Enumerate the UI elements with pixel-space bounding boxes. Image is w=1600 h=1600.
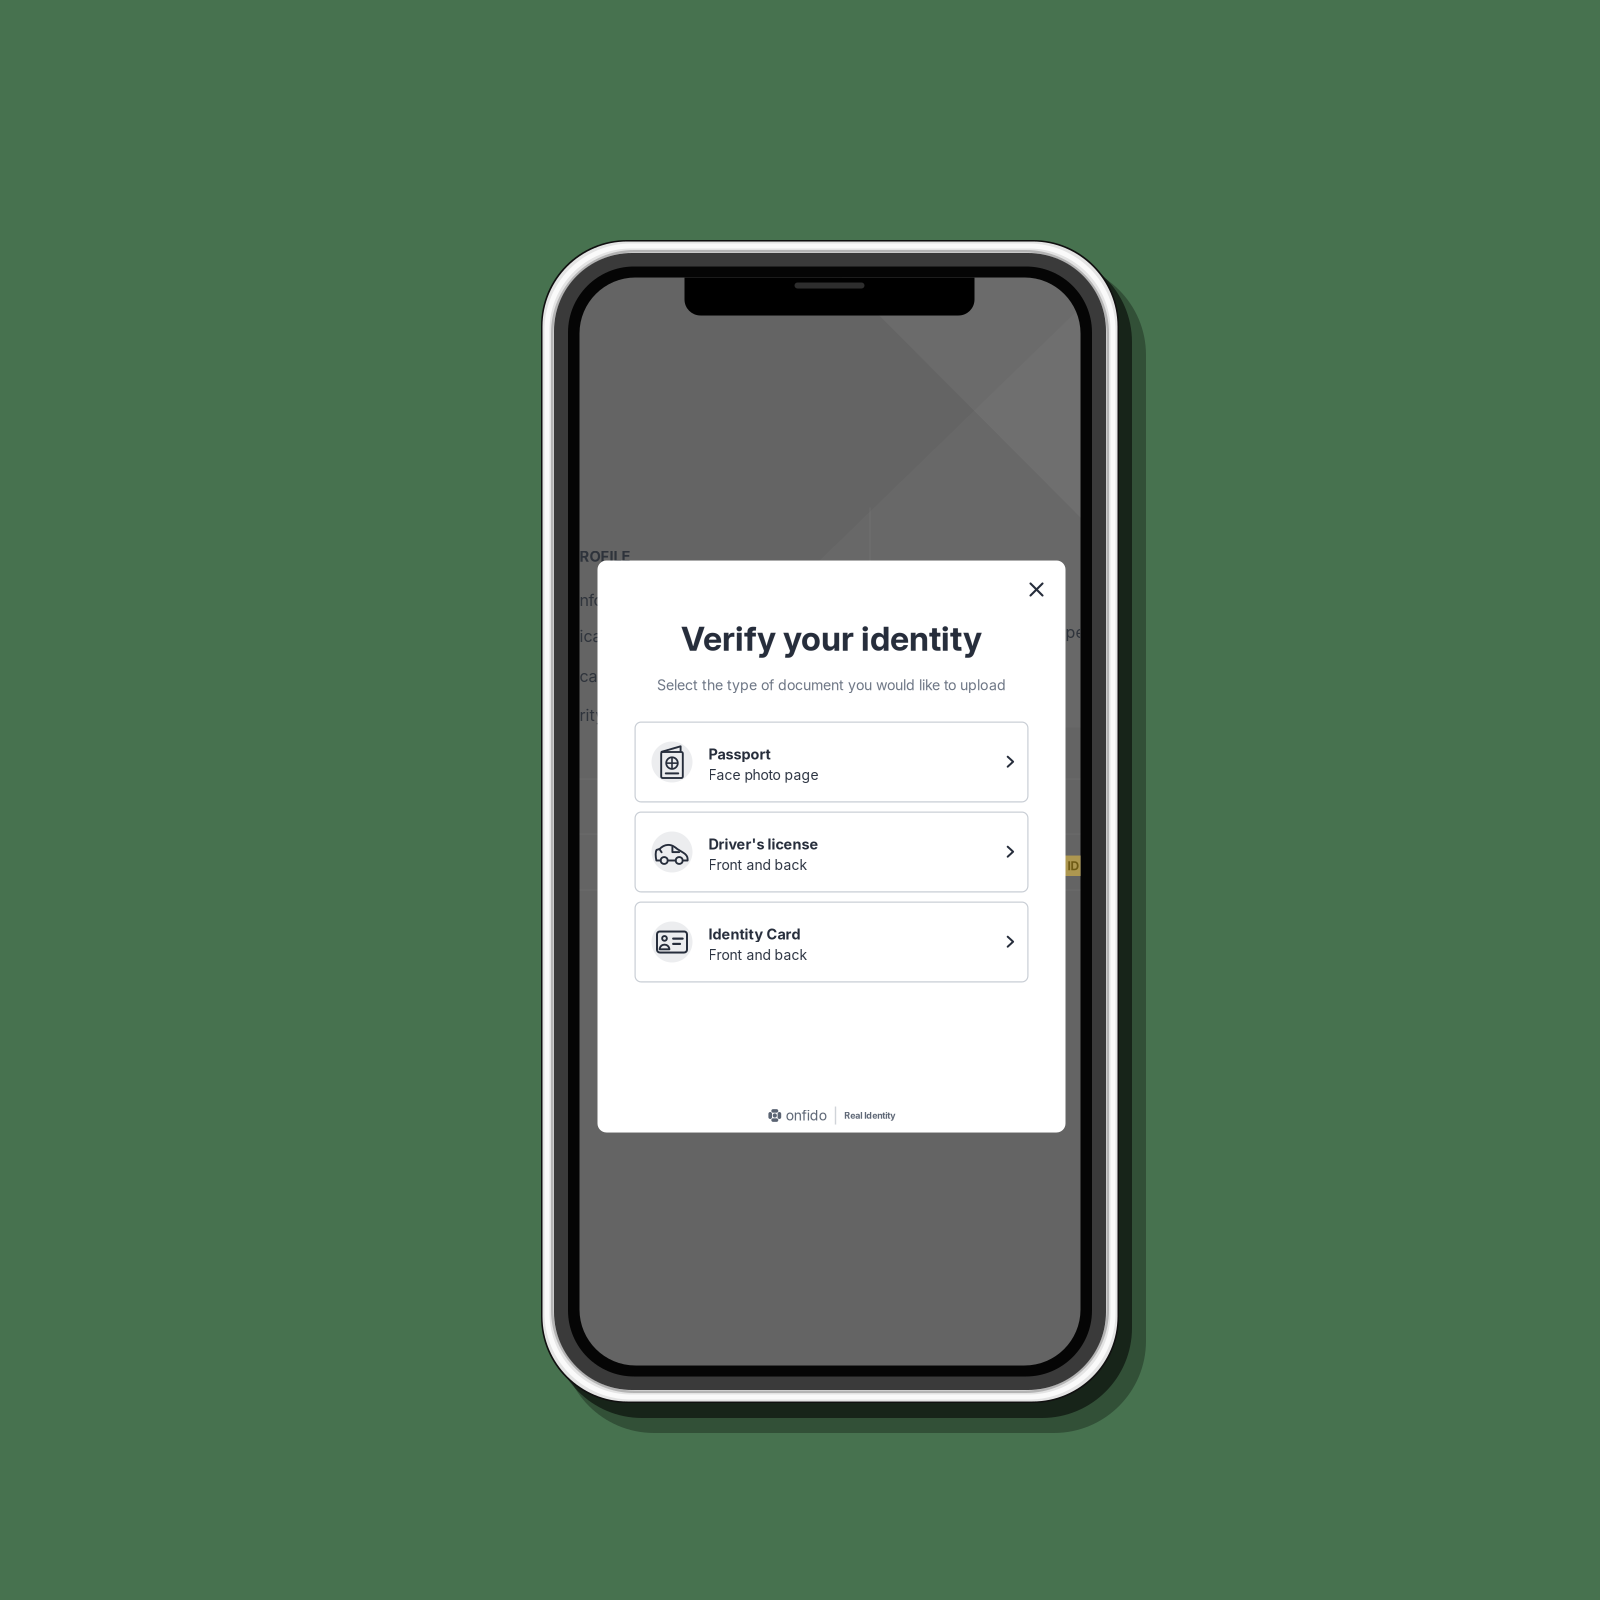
button[interactable]: Driver's license bbox=[634, 811, 1028, 892]
button[interactable]: Passport bbox=[634, 721, 1028, 802]
staticText: onfido bbox=[786, 1107, 827, 1124]
staticText: Security checks bbox=[542, 705, 662, 725]
button[interactable]: Identity Card bbox=[634, 901, 1028, 982]
staticText: Select the type of document you would li… bbox=[657, 676, 1006, 694]
button[interactable]: Close bbox=[1015, 568, 1057, 610]
staticText: Medical records bbox=[546, 626, 668, 646]
staticText: Driver's license bbox=[708, 835, 818, 853]
staticText: Passport bbox=[708, 745, 770, 763]
staticText: Open bbox=[1053, 622, 1093, 642]
staticText: Real Identity bbox=[844, 1110, 895, 1121]
staticText: Face photo page bbox=[708, 766, 818, 783]
staticText: Payment cards bbox=[509, 666, 621, 686]
staticText: Personal information bbox=[505, 590, 660, 610]
staticText: ID CHECK bbox=[1067, 858, 1125, 873]
staticText: PROFILE bbox=[569, 547, 630, 565]
staticText: Front and back bbox=[708, 856, 807, 873]
staticText: Front and back bbox=[708, 946, 807, 963]
staticText: Verify your identity bbox=[681, 618, 982, 659]
staticText: Identity Card bbox=[708, 925, 800, 943]
